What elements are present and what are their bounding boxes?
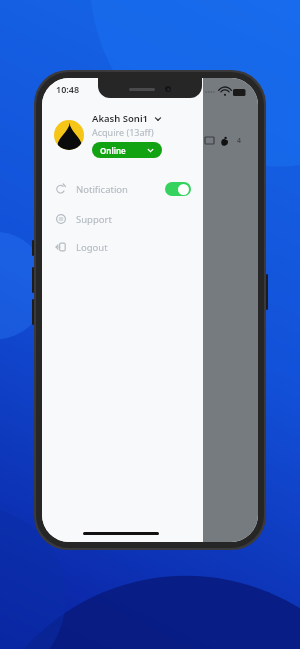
staticText: Logout — [76, 241, 108, 254]
button[interactable]: Akash Soni1 — [92, 112, 162, 125]
staticText: Notification — [76, 183, 165, 196]
staticText: Online — [100, 145, 126, 156]
button[interactable]: Notification — [42, 176, 203, 202]
staticText: Acquire (13aff) — [92, 126, 154, 138]
staticText: Support — [76, 213, 112, 226]
button[interactable]: Online — [92, 142, 162, 158]
staticText: Akash Soni1 — [92, 112, 149, 125]
staticText: 4 — [237, 136, 242, 146]
button[interactable]: Logout — [42, 236, 203, 258]
button[interactable]: Support — [42, 208, 203, 230]
staticText: 10:48 — [56, 83, 80, 95]
button[interactable]: Profile picture — [54, 120, 84, 150]
button[interactable]: Notification toggle — [165, 182, 191, 196]
